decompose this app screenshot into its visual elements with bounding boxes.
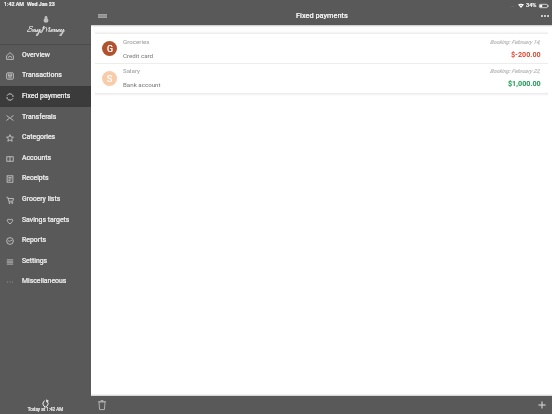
- button[interactable]: Miscellaneous: [0, 272, 91, 292]
- button[interactable]: More options: [538, 11, 552, 21]
- staticText: Accounts: [22, 154, 52, 162]
- button[interactable]: Transferals: [0, 107, 91, 128]
- button[interactable]: Delete: [95, 398, 109, 412]
- staticText: Fixed payments: [22, 92, 71, 100]
- staticText: Overview: [22, 51, 50, 59]
- button[interactable]: G: [95, 34, 548, 63]
- staticText: Savings targets: [22, 216, 70, 224]
- staticText: SayMoney: [27, 25, 65, 37]
- button[interactable]: S: [95, 64, 548, 93]
- button[interactable]: Receipts: [0, 169, 91, 189]
- staticText: Credit card: [123, 52, 154, 59]
- button[interactable]: Savings targets: [0, 210, 91, 231]
- staticText: Groceries: [123, 38, 150, 45]
- staticText: Fixed payments: [296, 11, 348, 20]
- staticText: G: [107, 44, 113, 54]
- button[interactable]: Open navigation drawer: [95, 11, 109, 21]
- button[interactable]: Accounts: [0, 148, 91, 169]
- staticText: Wed Jan 23: [27, 1, 55, 7]
- button[interactable]: Categories: [0, 128, 91, 148]
- button[interactable]: Settings: [0, 251, 91, 272]
- staticText: 34%: [526, 2, 537, 9]
- staticText: Today at 1:42 AM: [0, 407, 91, 412]
- staticText: Reports: [22, 236, 47, 244]
- button[interactable]: Grocery lists: [0, 189, 91, 210]
- staticText: Transferals: [22, 113, 57, 121]
- staticText: Categories: [22, 133, 56, 141]
- staticText: Miscellaneous: [22, 277, 67, 285]
- staticText: S: [107, 74, 113, 84]
- staticText: 1:42 AM: [4, 1, 24, 7]
- staticText: Booking: February 22,: [490, 68, 541, 74]
- staticText: $-200.00: [511, 50, 541, 58]
- staticText: Receipts: [22, 174, 49, 182]
- staticText: Transactions: [22, 71, 62, 79]
- button[interactable]: Add fixed payment: [535, 398, 549, 412]
- staticText: Bank account: [123, 81, 161, 88]
- staticText: Grocery lists: [22, 195, 61, 203]
- button[interactable]: Reports: [0, 231, 91, 251]
- button[interactable]: Overview: [0, 45, 91, 66]
- staticText: Salary: [123, 67, 140, 74]
- staticText: $1,000.00: [508, 79, 541, 87]
- button[interactable]: Transactions: [0, 66, 91, 86]
- staticText: Settings: [22, 257, 48, 265]
- staticText: Booking: February 14,: [490, 39, 541, 45]
- button[interactable]: Fixed payments: [0, 86, 91, 107]
